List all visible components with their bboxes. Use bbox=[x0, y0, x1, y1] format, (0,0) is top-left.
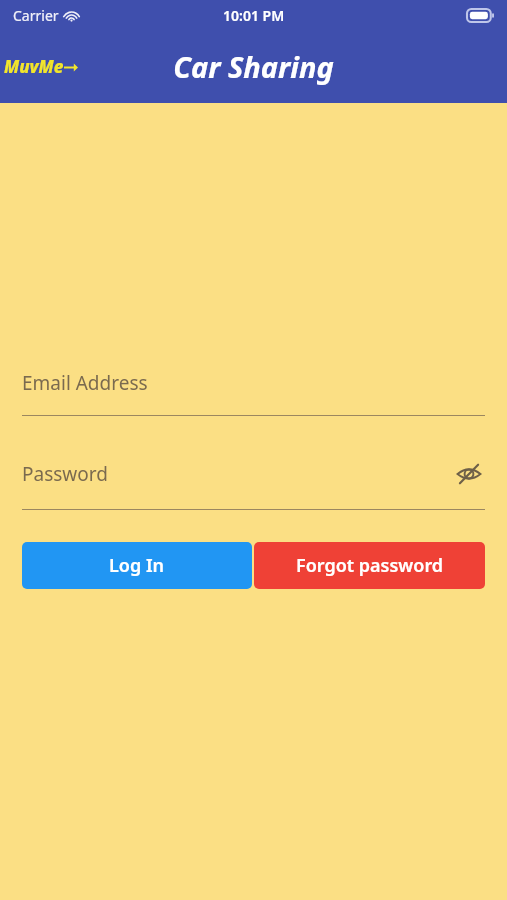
staticText: MuvMe bbox=[4, 55, 64, 78]
button[interactable]: MuvMe home bbox=[4, 55, 78, 78]
staticText: Log In bbox=[109, 553, 165, 578]
button[interactable]: Password bbox=[22, 458, 485, 510]
staticText: Forgot password bbox=[296, 553, 444, 578]
staticText: 10:01 PM bbox=[223, 6, 285, 25]
staticText: Email Address bbox=[22, 370, 485, 396]
button[interactable]: Show password bbox=[453, 458, 485, 490]
button[interactable]: Log In bbox=[22, 542, 252, 589]
staticText: Password bbox=[22, 461, 453, 487]
button[interactable]: Forgot password bbox=[254, 542, 485, 589]
staticText: Car Sharing bbox=[173, 47, 334, 86]
staticText: Carrier bbox=[13, 6, 59, 25]
button[interactable]: Email Address bbox=[22, 370, 485, 416]
